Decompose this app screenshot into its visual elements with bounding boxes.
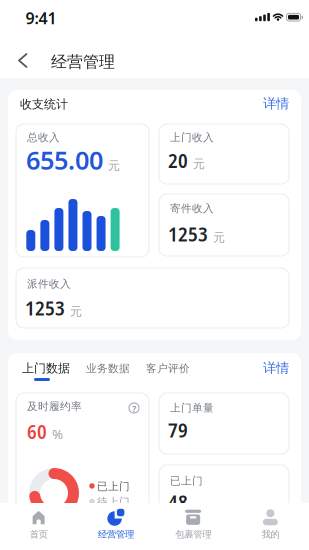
staticText: 及时履约率 xyxy=(27,400,82,413)
staticText: 1253 xyxy=(25,294,65,321)
staticText: 48 xyxy=(168,488,188,515)
staticText: 首页 xyxy=(30,529,48,540)
staticText: 9:41 xyxy=(25,7,56,29)
staticText: 包裹管理 xyxy=(175,529,211,540)
staticText: ? xyxy=(132,402,136,415)
button[interactable]: 我的 xyxy=(232,503,309,550)
button[interactable]: 客户评价 xyxy=(146,362,190,375)
button[interactable]: 业务数据 xyxy=(86,362,130,375)
staticText: 655.00 xyxy=(26,143,103,177)
staticText: 经营管理 xyxy=(51,52,115,72)
staticText: 总收入 xyxy=(27,131,60,144)
staticText: 20 xyxy=(168,146,188,174)
staticText: 已上门 xyxy=(170,474,203,488)
button[interactable]: 首页 xyxy=(0,503,77,550)
staticText: 元 xyxy=(70,304,82,319)
staticText: 我的 xyxy=(261,529,279,540)
staticText: 上门单量 xyxy=(170,401,214,415)
staticText: 已上门 xyxy=(97,480,130,493)
staticText: 上门收入 xyxy=(170,131,214,144)
staticText: 详情 xyxy=(263,360,289,376)
staticText: 60 xyxy=(27,417,47,445)
staticText: 79 xyxy=(168,416,188,443)
staticText: 详情 xyxy=(263,95,289,112)
staticText: 收支统计 xyxy=(20,97,68,112)
staticText: 经营管理 xyxy=(98,529,134,540)
button[interactable]: Back xyxy=(7,46,36,75)
staticText: 元 xyxy=(193,156,205,171)
staticText: 待上门 xyxy=(97,495,130,509)
staticText: 元 xyxy=(213,230,225,245)
button[interactable]: 详情 xyxy=(259,356,293,380)
staticText: 元 xyxy=(108,158,120,173)
staticText: % xyxy=(52,425,63,443)
staticText: 上门数据 xyxy=(22,361,70,376)
staticText: 寄件收入 xyxy=(170,202,214,215)
staticText: 业务数据 xyxy=(86,362,130,375)
button[interactable]: 上门数据 xyxy=(22,361,70,376)
button[interactable]: 经营管理 xyxy=(77,503,154,550)
staticText: 客户评价 xyxy=(146,362,190,375)
staticText: 1253 xyxy=(168,220,208,247)
staticText: 派件收入 xyxy=(27,277,71,291)
button[interactable]: 帮助 xyxy=(129,403,139,413)
button[interactable]: 包裹管理 xyxy=(154,503,232,550)
button[interactable]: 详情 xyxy=(259,91,293,116)
